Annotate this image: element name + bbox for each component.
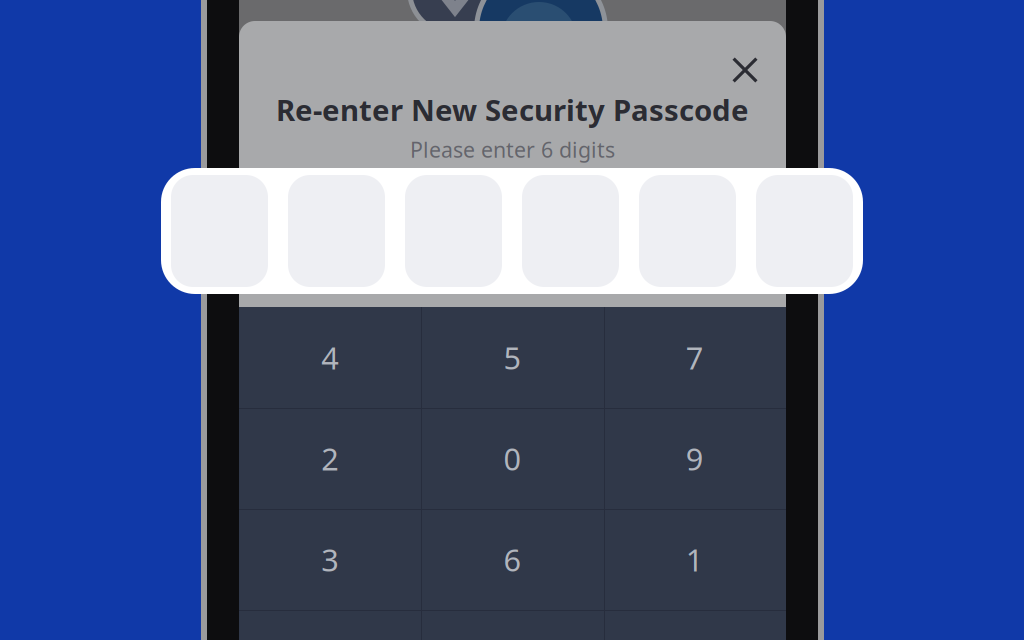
button[interactable]: 9 — [604, 408, 786, 509]
staticText: 5 — [503, 337, 521, 378]
button[interactable]: 2 — [239, 408, 421, 509]
staticText: 7 — [686, 337, 704, 378]
staticText: 2 — [321, 438, 339, 479]
button[interactable]: 0 — [421, 408, 604, 509]
button[interactable]: Close — [718, 43, 772, 97]
button[interactable]: 6 — [421, 509, 604, 610]
staticText: 0 — [503, 438, 521, 479]
staticText: 6 — [503, 539, 521, 580]
button[interactable]: 5 — [421, 307, 604, 408]
button[interactable]: 7 — [604, 307, 786, 408]
button[interactable]: 3 — [239, 509, 421, 610]
staticText: Re-enter New Security Passcode — [276, 90, 749, 129]
button[interactable]: 4 — [239, 307, 421, 408]
staticText: 1 — [686, 539, 704, 580]
button[interactable]: 1 — [604, 509, 786, 610]
staticText: Please enter 6 digits — [410, 135, 615, 164]
staticText: 4 — [321, 337, 339, 378]
staticText: 9 — [686, 438, 704, 479]
staticText: 3 — [321, 539, 339, 580]
